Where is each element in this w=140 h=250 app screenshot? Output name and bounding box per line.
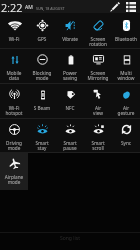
button[interactable]: Wi-Fi hotspot: [0, 83, 28, 118]
staticText: AM: [25, 4, 33, 11]
staticText: Smart pause: [56, 140, 84, 152]
button[interactable]: Edit quick settings: [108, 0, 121, 13]
button[interactable]: Air gesture: [112, 83, 140, 118]
button[interactable]: S Beam: [28, 83, 56, 118]
staticText: Song list: [60, 235, 81, 242]
button[interactable]: Smart scroll: [84, 118, 112, 152]
staticText: Wi-Fi: [0, 36, 28, 42]
button[interactable]: Wi-Fi: [0, 14, 28, 48]
staticText: Sync: [112, 140, 140, 146]
button[interactable]: Multi window: [112, 48, 140, 83]
staticText: NFC: [56, 105, 84, 111]
staticText: Multi window: [112, 70, 140, 82]
button[interactable]: Notification list: [124, 0, 137, 13]
staticText: GPS: [28, 36, 56, 42]
staticText: Vibrate: [56, 36, 84, 42]
button[interactable]: Sync: [112, 118, 140, 152]
button[interactable]: Bluetooth: [112, 14, 140, 48]
button[interactable]: Airplane mode: [0, 152, 28, 190]
button[interactable]: Vibrate: [56, 14, 84, 48]
button[interactable]: GPS: [28, 14, 56, 48]
button[interactable]: Air view: [84, 83, 112, 118]
staticText: Power saving: [56, 70, 84, 82]
staticText: Screen rotation: [84, 36, 112, 48]
staticText: Mobile data: [0, 70, 28, 82]
button[interactable]: Driving mode: [0, 118, 28, 152]
staticText: 2:22: [1, 0, 23, 13]
staticText: Air view: [84, 105, 112, 117]
staticText: Smart scroll: [84, 140, 112, 152]
staticText: Screen Mirroring: [84, 70, 112, 82]
staticText: Wi-Fi hotspot: [0, 105, 28, 117]
staticText: Smart stay: [28, 140, 56, 152]
staticText: Bluetooth: [112, 36, 140, 42]
staticText: Airplane mode: [0, 174, 28, 186]
button[interactable]: Screen Mirroring: [84, 48, 112, 83]
staticText: Driving mode: [0, 140, 28, 152]
button[interactable]: Screen rotation: [84, 14, 112, 48]
staticText: Air gesture: [112, 105, 140, 117]
button[interactable]: Mobile data: [0, 48, 28, 83]
button[interactable]: NFC: [56, 83, 84, 118]
staticText: Blocking mode: [28, 70, 56, 82]
button[interactable]: Blocking mode: [28, 48, 56, 83]
staticText: S Beam: [28, 105, 56, 111]
staticText: SUN, 18 AUGUST: [36, 6, 65, 11]
button[interactable]: Smart pause: [56, 118, 84, 152]
button[interactable]: Power saving: [56, 48, 84, 83]
button[interactable]: Smart stay: [28, 118, 56, 152]
